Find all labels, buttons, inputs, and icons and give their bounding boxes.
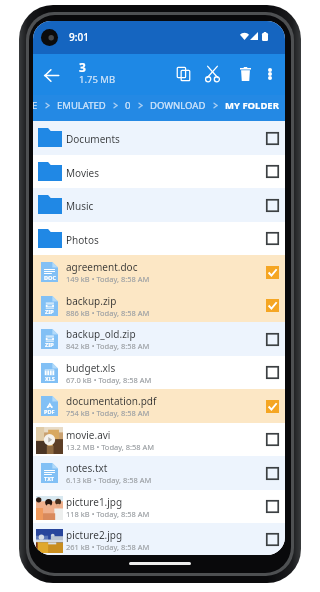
button[interactable]: picture1.jpg: [33, 490, 285, 523]
staticText: notes.txt: [66, 461, 108, 475]
staticText: DOWNLOAD: [150, 99, 206, 112]
button[interactable]: PDF: [33, 389, 285, 423]
staticText: 13.2 MB • Today, 8:58 AM: [66, 442, 155, 452]
button[interactable]: ZIP: [33, 322, 285, 356]
staticText: 118 kB • Today, 8:58 AM: [66, 509, 150, 519]
button[interactable]: Select documentation.pdf: [260, 389, 285, 423]
staticText: 261 kB • Today, 8:58 AM: [66, 542, 150, 552]
button[interactable]: Documents: [33, 121, 285, 155]
staticText: 1.75 MB: [79, 73, 116, 86]
staticText: agreement.doc: [66, 260, 138, 274]
button[interactable]: Select Music: [260, 188, 285, 222]
button[interactable]: Photos: [33, 222, 285, 255]
button[interactable]: Delete: [232, 61, 258, 87]
staticText: 0: [125, 99, 131, 112]
button[interactable]: Copy: [170, 61, 196, 87]
staticText: 886 kB • Today, 8:58 AM: [66, 308, 150, 318]
staticText: 67.0 kB • Today, 8:58 AM: [66, 375, 152, 385]
staticText: Documents: [66, 132, 120, 146]
button[interactable]: picture2.jpg: [33, 523, 285, 555]
button[interactable]: Select picture1.jpg: [260, 490, 285, 523]
staticText: Movies: [66, 166, 100, 180]
button[interactable]: Select agreement.doc: [260, 255, 285, 289]
button[interactable]: Back: [39, 63, 63, 87]
button[interactable]: ZIP: [33, 289, 285, 322]
staticText: DOC: [44, 274, 56, 281]
staticText: 6.13 kB • Today, 8:58 AM: [66, 475, 152, 485]
button[interactable]: Select Documents: [260, 121, 285, 155]
button[interactable]: movie.avi: [33, 423, 285, 456]
button[interactable]: XLS: [33, 356, 285, 389]
staticText: 149 kB • Today, 8:58 AM: [66, 274, 150, 284]
staticText: 9:01: [69, 30, 89, 44]
staticText: ZIP: [45, 308, 54, 315]
button[interactable]: Select Movies: [260, 155, 285, 188]
button[interactable]: More options: [257, 61, 283, 87]
staticText: PDF: [44, 408, 55, 415]
staticText: Photos: [66, 233, 99, 247]
button[interactable]: TXT: [33, 456, 285, 490]
staticText: TXT: [44, 475, 55, 482]
staticText: documentation.pdf: [66, 394, 157, 408]
button[interactable]: Select movie.avi: [260, 423, 285, 456]
staticText: E: [33, 99, 38, 112]
staticText: EMULATED: [57, 99, 106, 112]
staticText: MY FOLDER: [225, 99, 279, 112]
button[interactable]: Select picture2.jpg: [260, 523, 285, 555]
staticText: backup.zip: [66, 294, 117, 308]
button[interactable]: DOC: [33, 255, 285, 289]
staticText: budget.xls: [66, 361, 116, 375]
staticText: 842 kB • Today, 8:58 AM: [66, 341, 150, 351]
staticText: picture1.jpg: [66, 495, 123, 509]
staticText: 754 kB • Today, 8:58 AM: [66, 408, 150, 418]
button[interactable]: Select backup_old.zip: [260, 322, 285, 356]
button[interactable]: Select Photos: [260, 222, 285, 255]
button[interactable]: Cut: [199, 61, 225, 87]
staticText: Music: [66, 199, 94, 213]
button[interactable]: Music: [33, 188, 285, 222]
staticText: ZIP: [45, 341, 54, 348]
staticText: backup_old.zip: [66, 327, 136, 341]
button[interactable]: Movies: [33, 155, 285, 188]
button[interactable]: Select budget.xls: [260, 356, 285, 389]
staticText: movie.avi: [66, 428, 111, 442]
staticText: picture2.jpg: [66, 528, 123, 542]
staticText: 3: [79, 59, 86, 75]
button[interactable]: Select notes.txt: [260, 456, 285, 490]
staticText: XLS: [45, 375, 55, 382]
button[interactable]: Select backup.zip: [260, 289, 285, 322]
